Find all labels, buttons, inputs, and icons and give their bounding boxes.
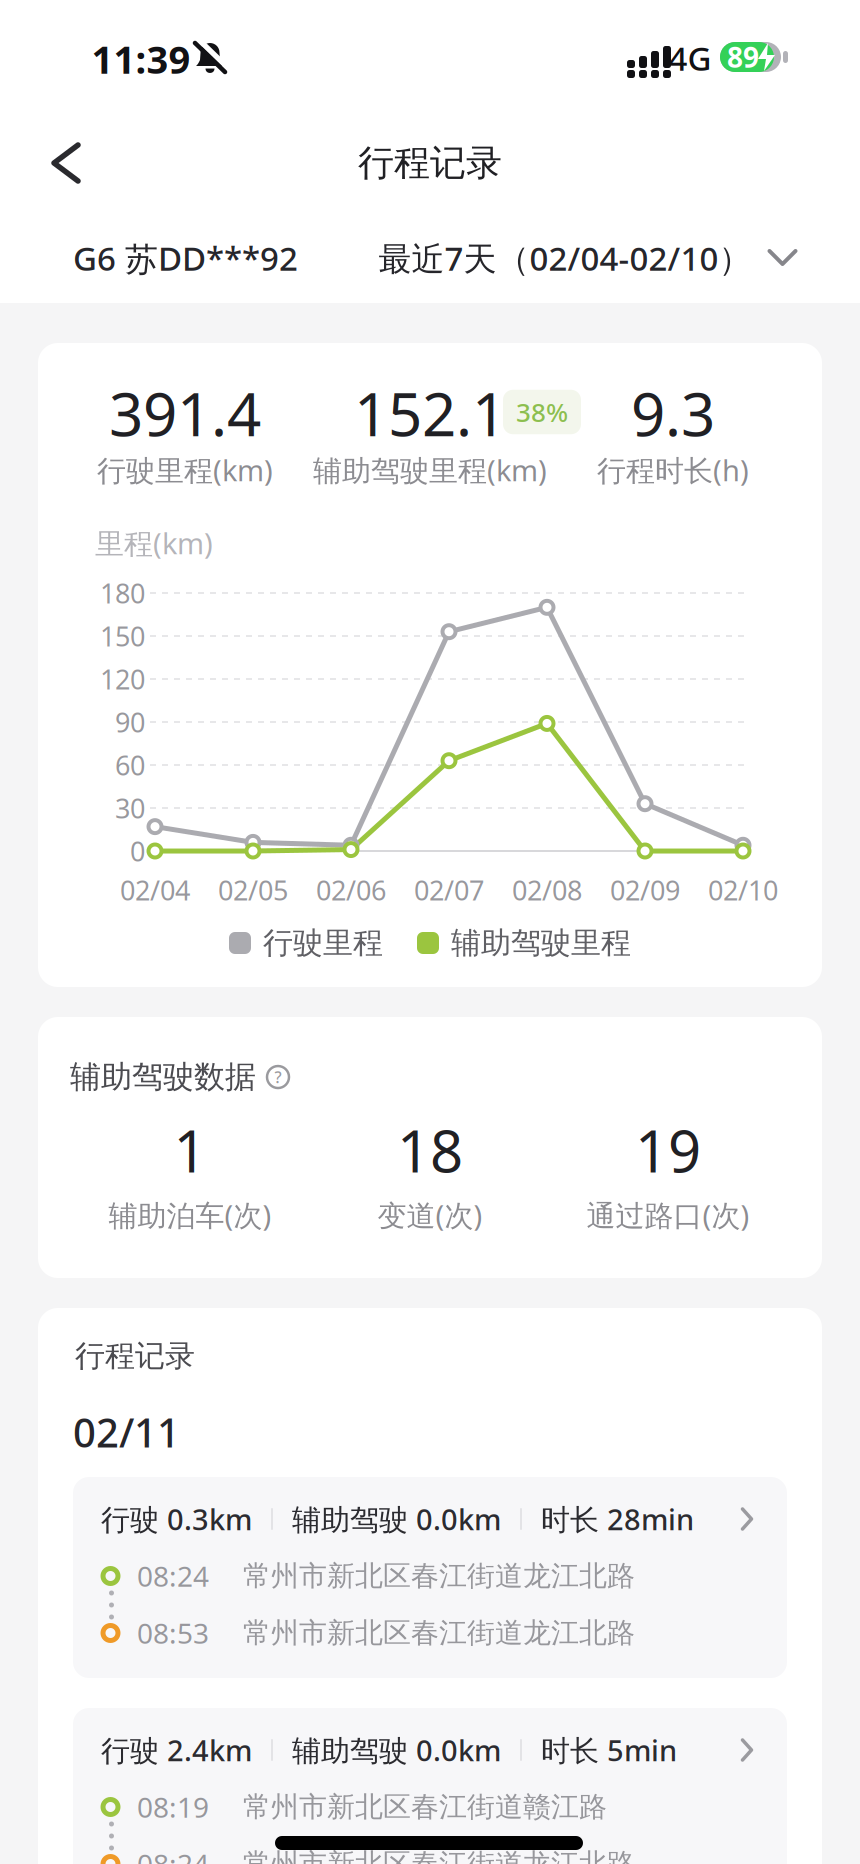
staticText: 变道(次) <box>377 1196 482 1234</box>
staticText: 9.3 <box>631 373 715 453</box>
staticText: 02/09 <box>610 872 680 908</box>
staticText: 02/05 <box>218 872 288 908</box>
staticText: 11:39 <box>91 34 190 84</box>
button[interactable]: 行驶 2.4km <box>73 1708 787 1864</box>
staticText: 18 <box>397 1111 463 1188</box>
staticText: 行驶里程 <box>263 925 383 961</box>
staticText: 辅助驾驶 0.0km <box>292 1500 501 1538</box>
staticText: 辅助驾驶数据 <box>70 1058 256 1096</box>
staticText: 常州市新北区春江街道龙江北路 <box>243 1616 635 1650</box>
staticText: 辅助泊车(次) <box>108 1196 271 1234</box>
button[interactable]: 行驶 0.3km <box>73 1477 787 1678</box>
staticText: 0 <box>130 833 145 869</box>
staticText: 02/11 <box>73 1405 180 1458</box>
staticText: 02/06 <box>316 872 386 908</box>
staticText: 02/04 <box>120 872 190 908</box>
staticText: 常州市新北区春江街道赣江路 <box>243 1790 607 1824</box>
staticText: 08:24 <box>137 1845 209 1864</box>
staticText: 行驶 2.4km <box>101 1731 252 1769</box>
button[interactable]: G6 苏DD***92 <box>73 236 373 280</box>
staticText: 30 <box>115 790 145 826</box>
staticText: ? <box>274 1066 281 1088</box>
staticText: 4G <box>668 36 711 80</box>
staticText: 辅助驾驶里程 <box>451 925 631 961</box>
staticText: 08:19 <box>137 1788 209 1826</box>
staticText: 行程记录 <box>358 141 502 185</box>
staticText: 行程时长(h) <box>597 451 749 489</box>
staticText: 行程记录 <box>75 1338 195 1374</box>
button[interactable]: 最近7天（02/04-02/10） <box>378 236 797 280</box>
staticText: 通过路口(次) <box>586 1196 749 1234</box>
staticText: 180 <box>100 575 145 611</box>
staticText: 最近7天（02/04-02/10） <box>378 236 751 280</box>
staticText: 常州市新北区春江街道龙江北路 <box>243 1847 635 1864</box>
staticText: 152.1 <box>354 373 506 453</box>
staticText: 辅助驾驶里程(km) <box>313 451 547 489</box>
staticText: 19 <box>635 1111 701 1188</box>
staticText: 1 <box>173 1111 206 1188</box>
staticText: 里程(km) <box>95 524 213 562</box>
staticText: 60 <box>115 747 145 783</box>
staticText: 行驶 0.3km <box>101 1500 252 1538</box>
button[interactable]: Back <box>38 129 94 197</box>
staticText: 08:24 <box>137 1557 209 1595</box>
staticText: G6 苏DD***92 <box>73 236 298 280</box>
button[interactable]: Help <box>266 1065 290 1089</box>
staticText: 120 <box>100 661 145 697</box>
staticText: 行驶里程(km) <box>97 451 273 489</box>
staticText: 02/08 <box>512 872 582 908</box>
staticText: 89 <box>727 38 759 76</box>
staticText: 391.4 <box>109 373 261 453</box>
staticText: 08:53 <box>137 1614 209 1652</box>
staticText: 辅助驾驶 0.0km <box>292 1731 501 1769</box>
staticText: 90 <box>115 704 145 740</box>
staticText: 常州市新北区春江街道龙江北路 <box>243 1559 635 1593</box>
staticText: 150 <box>100 618 145 654</box>
staticText: 时长 5min <box>541 1731 677 1769</box>
staticText: 02/07 <box>414 872 484 908</box>
staticText: 时长 28min <box>541 1500 694 1538</box>
staticText: 38% <box>516 395 568 429</box>
staticText: 02/10 <box>708 872 778 908</box>
